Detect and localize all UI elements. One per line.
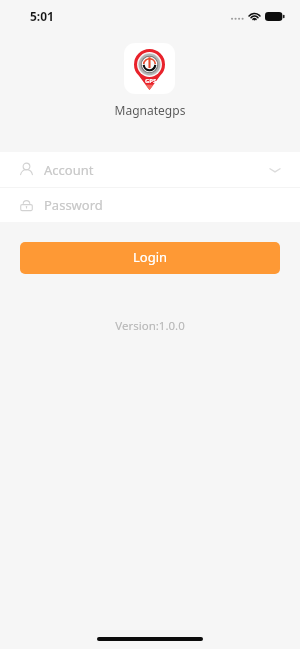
staticText: GPS bbox=[145, 77, 157, 85]
staticText: Password bbox=[44, 196, 103, 214]
staticText: Version:1.0.0 bbox=[0, 318, 300, 334]
staticText: 5:01 bbox=[30, 8, 54, 24]
staticText: Login bbox=[133, 248, 168, 266]
staticText: Magnategps bbox=[0, 102, 300, 118]
button[interactable]: Account bbox=[0, 152, 300, 187]
button[interactable]: Password bbox=[0, 188, 300, 222]
staticText: Account bbox=[44, 161, 94, 179]
button[interactable]: Login bbox=[20, 242, 280, 274]
button[interactable]: Show saved accounts bbox=[269, 164, 281, 176]
